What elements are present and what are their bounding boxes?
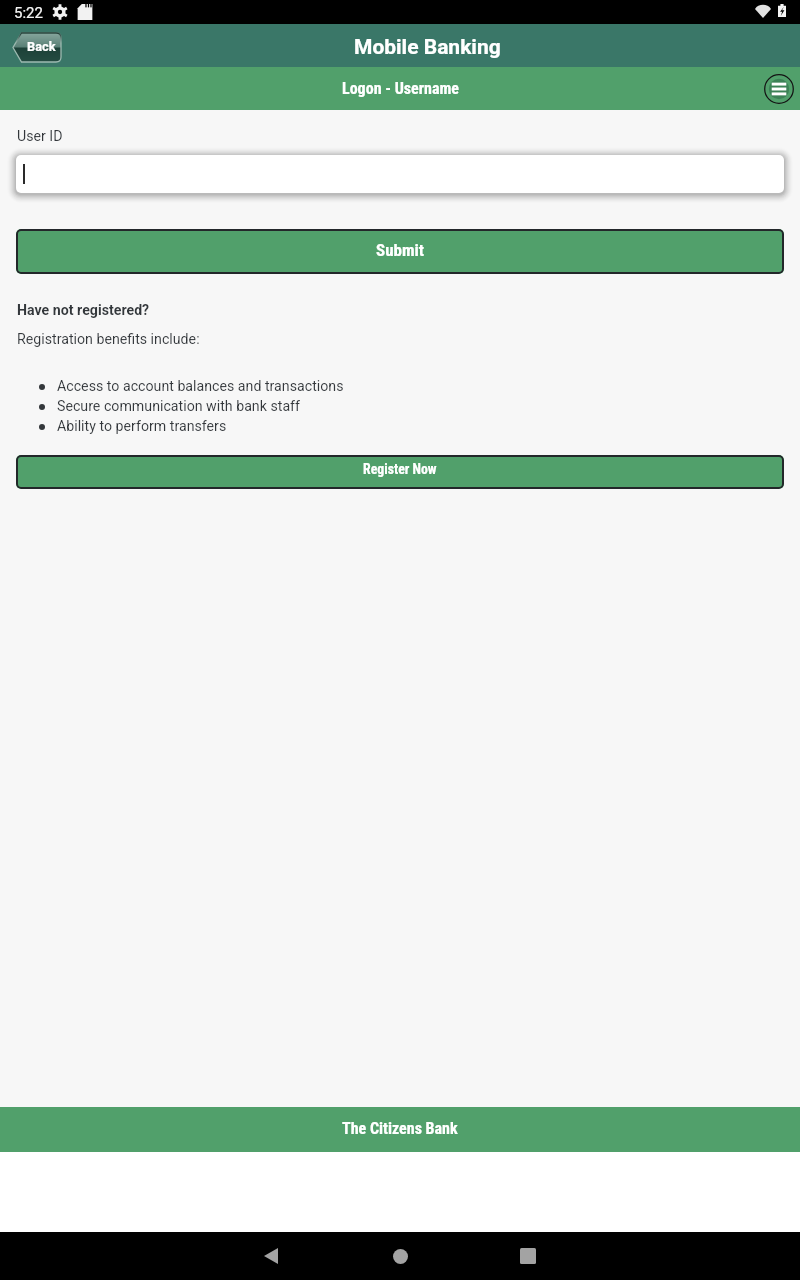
staticText: Register Now — [363, 461, 437, 477]
staticText: Submit — [376, 240, 425, 260]
button[interactable] — [16, 155, 784, 193]
button[interactable]: Recent apps — [504, 1232, 552, 1280]
staticText: Registration benefits include: — [17, 331, 200, 348]
button[interactable]: Home — [376, 1232, 424, 1280]
staticText: Logon - Username — [342, 79, 459, 98]
staticText: Ability to perform transfers — [57, 418, 227, 435]
button[interactable]: Register Now — [16, 455, 784, 489]
staticText: Have not registered? — [17, 302, 150, 319]
staticText: Back — [27, 39, 56, 54]
staticText: The Citizens Bank — [342, 1119, 458, 1138]
staticText: Secure communication with bank staff — [57, 398, 300, 415]
staticText: Mobile Banking — [354, 35, 501, 60]
button[interactable]: Submit — [16, 229, 784, 274]
staticText: Access to account balances and transacti… — [57, 378, 344, 395]
button[interactable]: Open menu — [764, 74, 794, 104]
button[interactable]: Back — [13, 33, 61, 62]
staticText: User ID — [17, 128, 63, 145]
staticText: 5:22 — [14, 4, 43, 22]
button[interactable]: Back — [247, 1232, 295, 1280]
